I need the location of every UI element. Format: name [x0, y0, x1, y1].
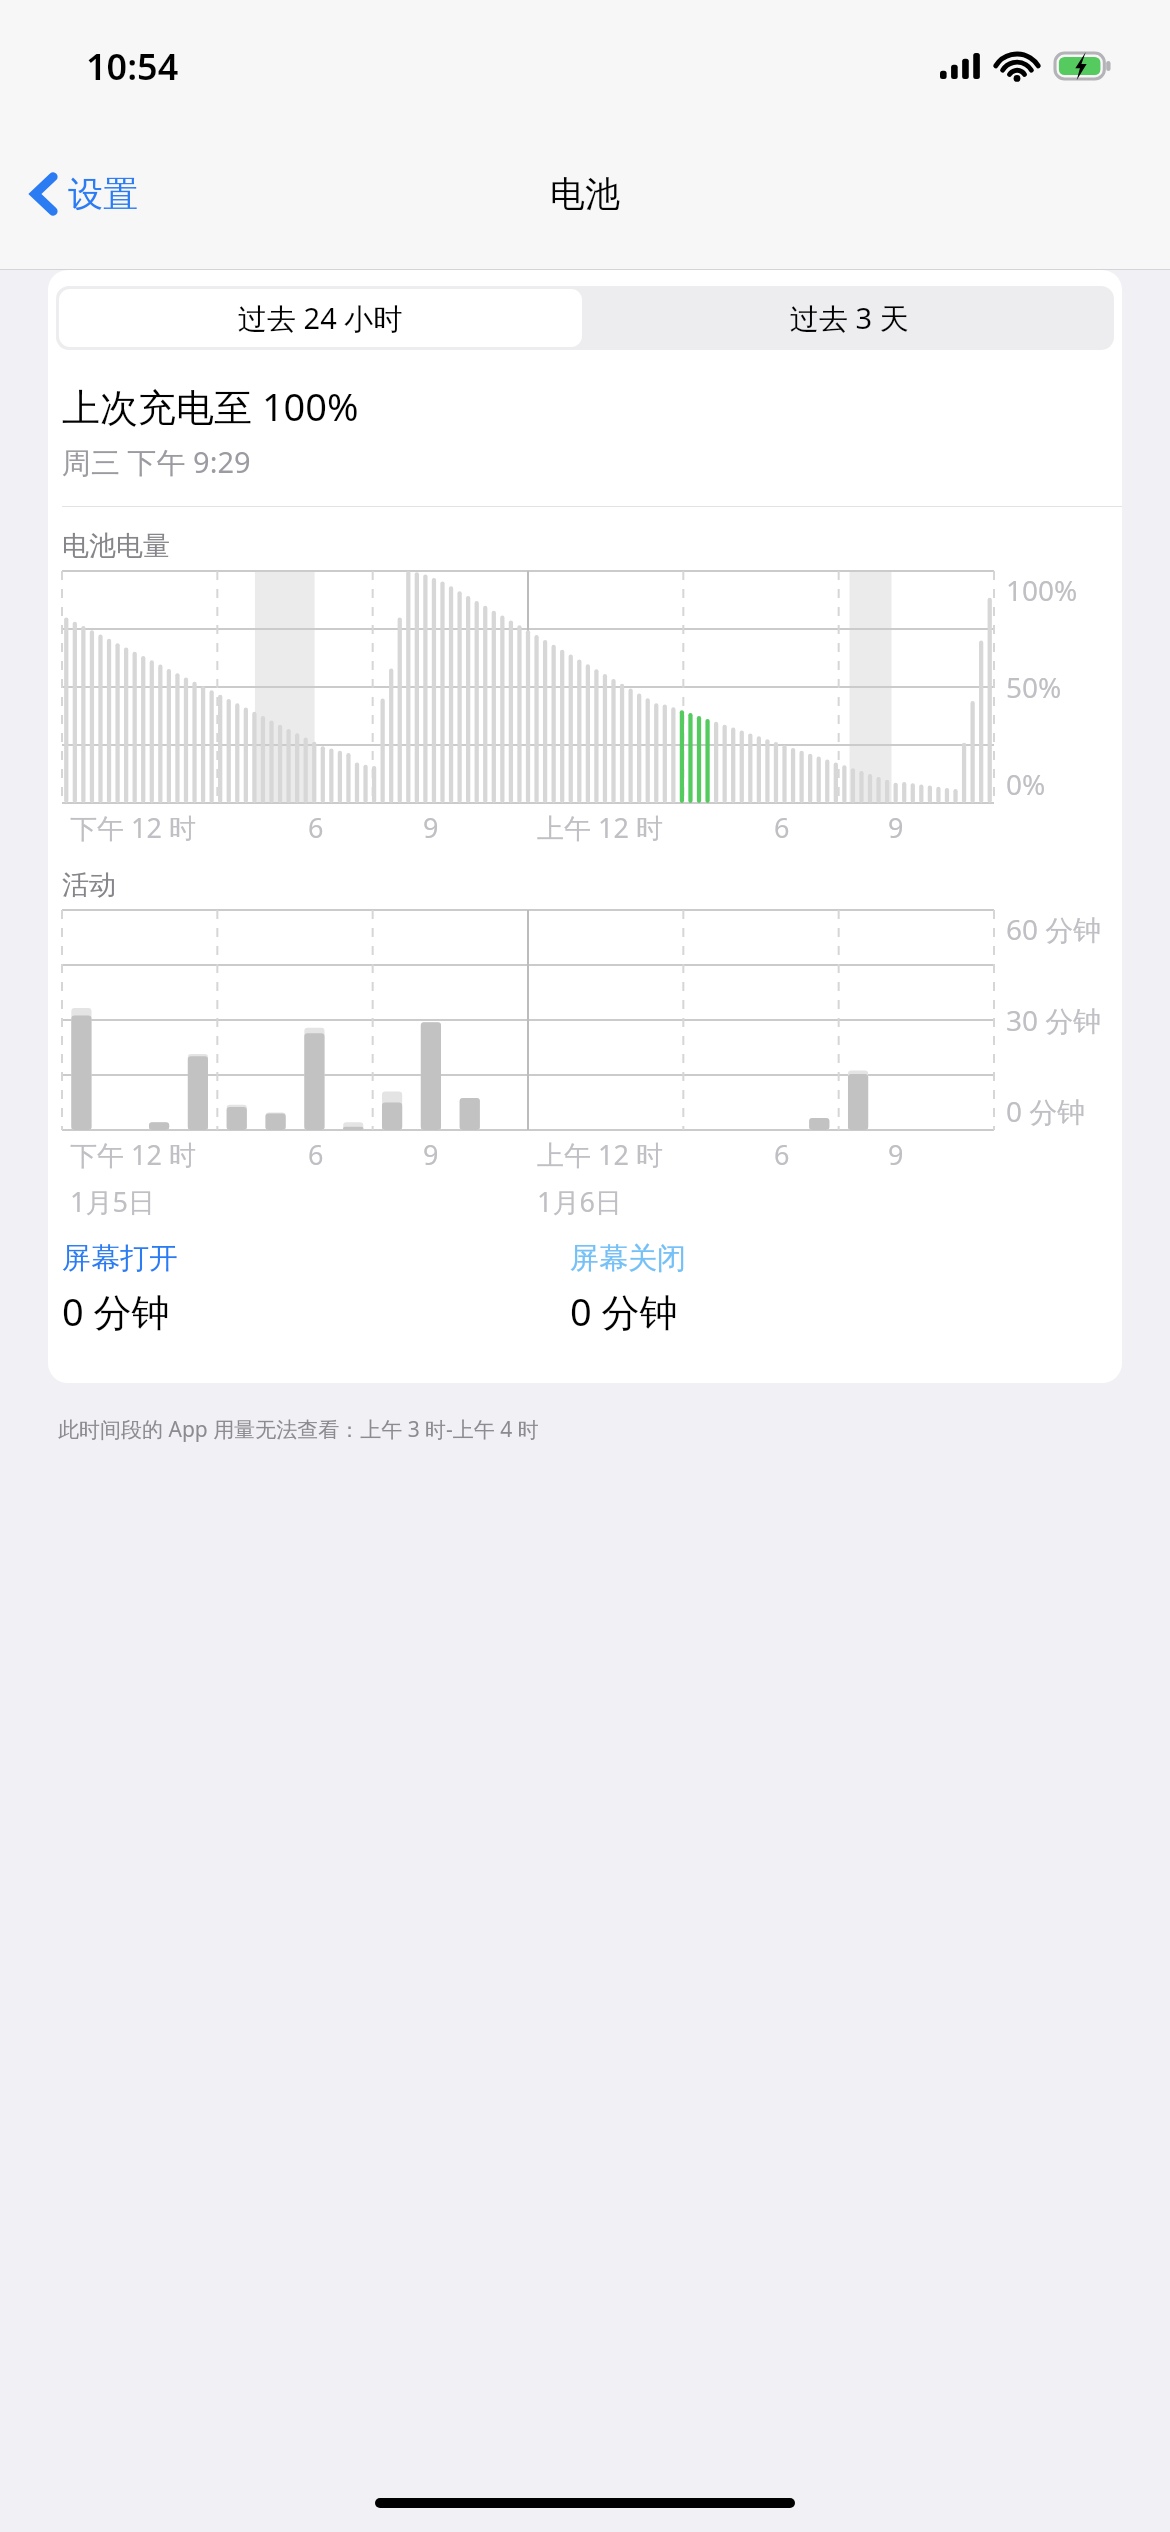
staticText: 6: [774, 809, 790, 846]
staticText: 6: [308, 809, 324, 846]
staticText: 9: [888, 809, 904, 846]
staticText: 9: [423, 1136, 439, 1173]
staticText: 屏幕打开: [62, 1240, 178, 1277]
staticText: 1月6日: [537, 1183, 622, 1220]
staticText: 6: [308, 1136, 324, 1173]
staticText: 过去 24 小时: [238, 298, 403, 338]
staticText: 9: [423, 809, 439, 846]
staticText: 6: [774, 1136, 790, 1173]
staticText: 0 分钟: [1006, 1092, 1086, 1130]
staticText: 上次充电至 100%: [62, 380, 359, 432]
staticText: 10:54: [86, 42, 179, 91]
other: Cellular signal: [940, 53, 980, 79]
staticText: 上午 12 时: [537, 809, 663, 846]
staticText: 0 分钟: [62, 1285, 170, 1337]
other: Wi-Fi: [998, 53, 1036, 80]
staticText: 100%: [1006, 571, 1078, 609]
staticText: 此时间段的 App 用量无法查看：上午 3 时-上午 4 时: [58, 1415, 1146, 1444]
button[interactable]: 过去 3 天: [585, 286, 1114, 350]
staticText: 电池: [550, 172, 620, 216]
staticText: 50%: [1006, 668, 1062, 706]
staticText: 30 分钟: [1006, 1001, 1102, 1039]
staticText: 0 分钟: [570, 1285, 678, 1337]
other: Battery charging: [1054, 52, 1112, 80]
staticText: 过去 3 天: [790, 298, 909, 338]
staticText: 1月5日: [70, 1183, 155, 1220]
staticText: 0%: [1006, 765, 1046, 803]
button[interactable]: 屏幕关闭: [570, 1240, 1108, 1337]
button[interactable]: 设置: [22, 160, 148, 228]
staticText: 设置: [68, 172, 138, 216]
staticText: 屏幕关闭: [570, 1240, 686, 1277]
staticText: 上午 12 时: [537, 1136, 663, 1173]
staticText: 周三 下午 9:29: [62, 442, 251, 482]
button[interactable]: 过去 24 小时: [59, 289, 582, 347]
staticText: 下午 12 时: [70, 1136, 196, 1173]
staticText: 活动: [62, 868, 116, 902]
staticText: 60 分钟: [1006, 910, 1102, 948]
staticText: 电池电量: [62, 529, 170, 563]
button[interactable]: 屏幕打开: [62, 1240, 570, 1337]
staticText: 9: [888, 1136, 904, 1173]
staticText: 下午 12 时: [70, 809, 196, 846]
